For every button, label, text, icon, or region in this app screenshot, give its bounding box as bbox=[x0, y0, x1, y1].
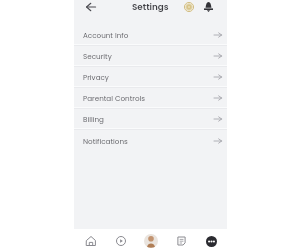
button[interactable]: Notifications bbox=[201, 0, 215, 13]
staticText: Account Info bbox=[83, 30, 129, 40]
button[interactable]: Back bbox=[80, 0, 101, 13]
button[interactable]: Billing bbox=[74, 109, 227, 128]
button[interactable]: Privacy bbox=[74, 67, 227, 86]
button[interactable]: Parental Controls bbox=[74, 88, 227, 107]
button[interactable]: Security bbox=[74, 46, 227, 65]
staticText: Billing bbox=[83, 114, 104, 124]
button[interactable]: Profile bbox=[140, 231, 162, 250]
staticText: Security bbox=[83, 51, 112, 61]
button[interactable]: Notifications bbox=[74, 130, 227, 151]
button[interactable]: Home bbox=[80, 231, 102, 250]
button[interactable]: Notes bbox=[170, 231, 192, 250]
button[interactable]: Account Info bbox=[74, 25, 227, 44]
button[interactable]: Rewards bbox=[182, 0, 196, 13]
staticText: Settings bbox=[132, 1, 169, 13]
staticText: Parental Controls bbox=[83, 93, 146, 103]
button[interactable]: Settings bbox=[122, 0, 179, 13]
button[interactable]: More bbox=[200, 231, 222, 250]
staticText: Privacy bbox=[83, 72, 109, 82]
button[interactable]: Videos bbox=[110, 231, 132, 250]
staticText: Notifications bbox=[83, 136, 128, 146]
